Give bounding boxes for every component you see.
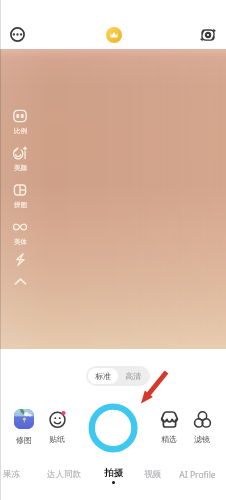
staticText: 高清 [125, 371, 141, 381]
button[interactable]: 修图 [9, 409, 39, 445]
button[interactable]: Flash [9, 248, 31, 270]
staticText: 达人同款 [47, 469, 81, 480]
button[interactable]: Take photo [86, 400, 139, 453]
button[interactable]: 精选 [154, 411, 184, 444]
button[interactable]: 滤镜 [187, 411, 217, 444]
button[interactable]: Switch camera [197, 24, 218, 45]
button[interactable]: 高清 [125, 371, 141, 381]
button[interactable]: 果冻 [0, 469, 26, 480]
staticText: 美颜 [14, 164, 27, 172]
button[interactable]: AI Profile [176, 469, 219, 481]
button[interactable]: Collapse tools [9, 270, 31, 292]
button[interactable]: 拍摄 [102, 467, 124, 484]
staticText: 滤镜 [194, 434, 210, 444]
staticText: 贴纸 [49, 434, 65, 444]
staticText: 果冻 [3, 469, 20, 480]
staticText: 拍摄 [104, 467, 123, 479]
staticText: 比例 [14, 127, 27, 135]
button[interactable]: 美体 [7, 220, 33, 257]
staticText: 标准 [95, 371, 111, 381]
button[interactable]: More options [7, 24, 28, 45]
staticText: AI Profile [179, 469, 216, 481]
button[interactable]: 贴纸 [42, 411, 72, 444]
staticText: 美体 [14, 238, 27, 246]
staticText: 精选 [161, 434, 177, 444]
button[interactable]: 比例 [7, 109, 33, 146]
button[interactable]: 美颜 [7, 146, 33, 183]
staticText: 视频 [144, 469, 161, 480]
staticText: 拼图 [14, 201, 27, 209]
button[interactable]: 拼图 [7, 183, 33, 220]
button[interactable]: 达人同款 [44, 469, 84, 480]
button[interactable]: VIP [103, 24, 124, 45]
staticText: 修图 [16, 435, 32, 445]
button[interactable]: 标准 [95, 371, 111, 381]
button[interactable]: 视频 [142, 469, 162, 480]
